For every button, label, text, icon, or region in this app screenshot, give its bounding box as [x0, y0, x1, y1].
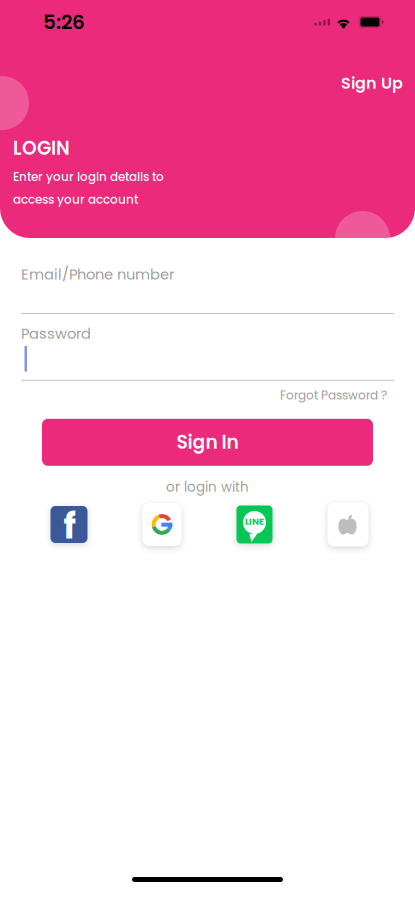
staticText: access your account — [13, 191, 138, 208]
staticText: LOGIN — [13, 135, 70, 161]
button[interactable]: Sign in with LINE — [236, 505, 272, 543]
button[interactable]: Sign in with Facebook — [50, 506, 87, 543]
staticText: 5:26 — [43, 8, 85, 36]
staticText: or login with — [166, 478, 249, 496]
button[interactable]: Sign in with Google — [142, 503, 181, 546]
staticText: Password — [21, 323, 91, 344]
staticText: Enter your login details to — [13, 168, 164, 185]
staticText: Email/Phone number — [21, 264, 174, 284]
button[interactable]: Sign Up — [331, 64, 413, 102]
staticText: f — [63, 502, 75, 551]
button[interactable]: Forgot Password ? — [276, 383, 391, 408]
staticText: Forgot Password ? — [280, 387, 387, 404]
button[interactable]: Sign In — [42, 419, 373, 466]
staticText: Sign In — [176, 429, 238, 455]
staticText: Sign Up — [341, 72, 403, 94]
staticText: LINE — [245, 515, 264, 528]
button[interactable]: Sign in with Apple — [327, 502, 368, 546]
